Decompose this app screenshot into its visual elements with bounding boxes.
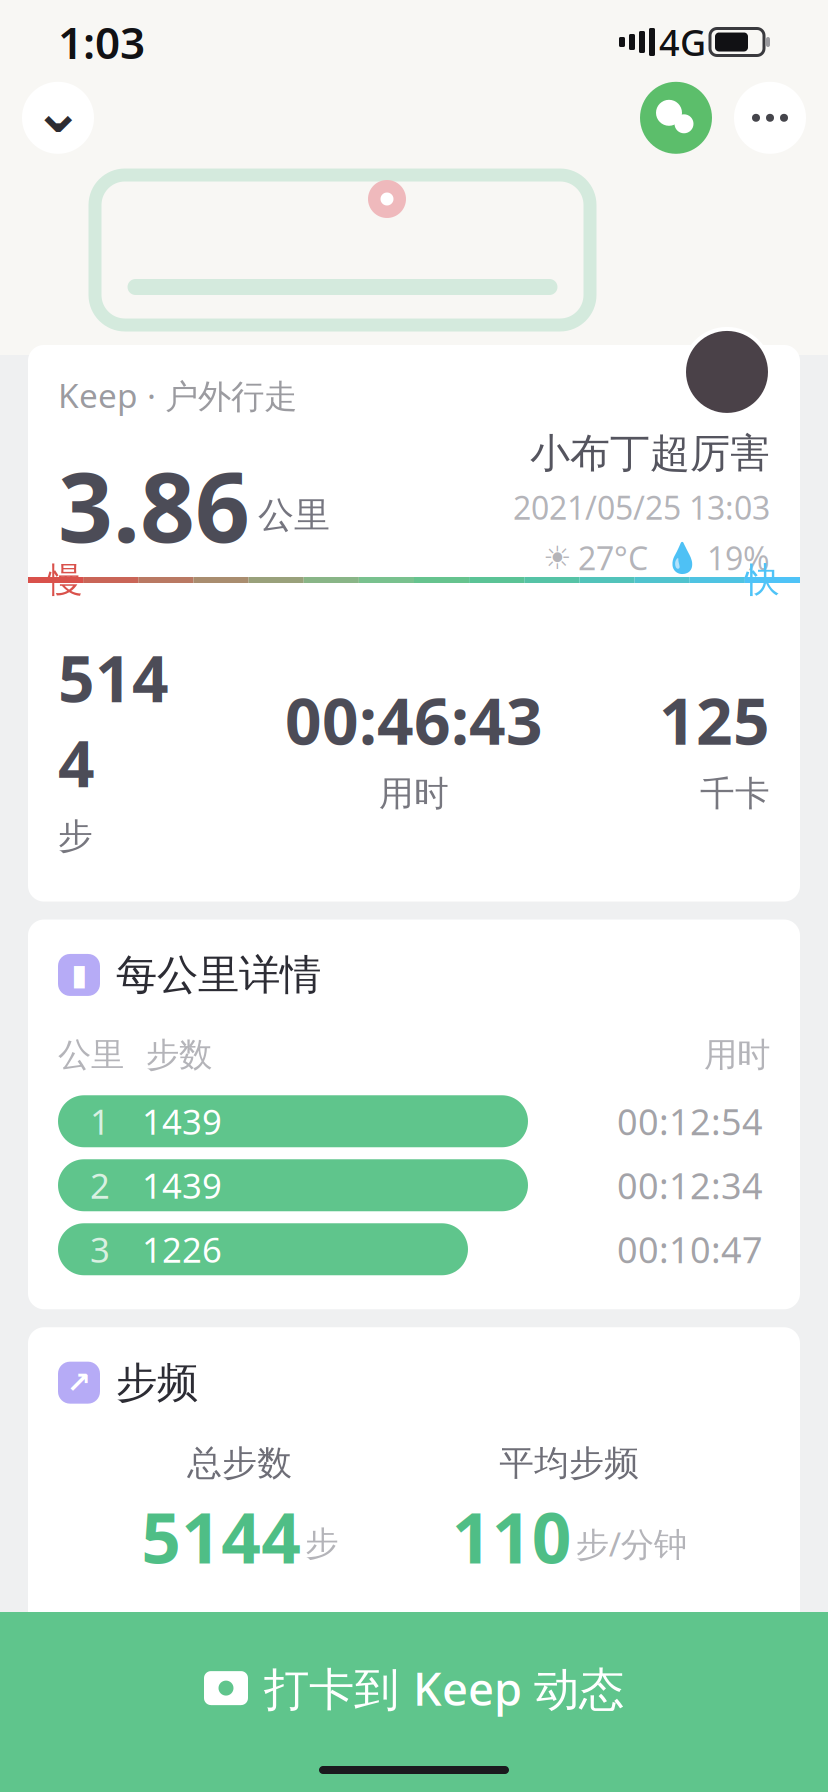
staticText: 00:10:47 bbox=[617, 1225, 763, 1273]
staticText: 1 bbox=[90, 1098, 110, 1144]
staticText: 3.86 bbox=[58, 441, 250, 569]
staticText: 125 bbox=[659, 677, 770, 762]
staticText: 1439 bbox=[142, 1162, 222, 1208]
staticText: 平均步频 bbox=[499, 1442, 639, 1485]
button[interactable]: Collapse bbox=[22, 76, 94, 160]
staticText: 💧 bbox=[664, 541, 701, 575]
staticText: ⌄ bbox=[32, 76, 83, 146]
staticText: 00:12:34 bbox=[617, 1161, 763, 1209]
staticText: 用时 bbox=[704, 1034, 770, 1075]
staticText: 00:12:54 bbox=[617, 1097, 763, 1145]
staticText: 19% bbox=[707, 537, 770, 579]
staticText: 快 bbox=[745, 559, 780, 601]
staticText: 步/分钟 bbox=[576, 1521, 687, 1566]
staticText: ☀ bbox=[543, 540, 572, 576]
staticText: 慢 bbox=[48, 559, 83, 601]
staticText: 1226 bbox=[142, 1226, 222, 1272]
staticText: Keep · 户外行走 bbox=[58, 373, 297, 417]
staticText: 3 bbox=[90, 1226, 110, 1272]
staticText: 每公里详情 bbox=[116, 950, 321, 1000]
staticText: 公里 bbox=[58, 1034, 124, 1075]
staticText: ↗ bbox=[66, 1366, 91, 1399]
button[interactable]: Share to WeChat bbox=[640, 82, 712, 154]
button[interactable]: More options bbox=[734, 82, 806, 154]
staticText: 步 bbox=[305, 1523, 338, 1564]
staticText: 步数 bbox=[146, 1034, 212, 1075]
staticText: 小布丁超厉害 bbox=[530, 429, 770, 478]
staticText: 27°C bbox=[578, 537, 648, 579]
staticText: 步 bbox=[58, 815, 93, 858]
staticText: 2021/05/25 13:03 bbox=[513, 486, 770, 529]
staticText: 打卡到 Keep 动态 bbox=[264, 1658, 624, 1718]
button[interactable]: 打卡到 Keep 动态 bbox=[0, 1612, 828, 1792]
staticText: 总步数 bbox=[187, 1442, 292, 1485]
staticText: 用时 bbox=[379, 772, 449, 815]
staticText: 千卡 bbox=[700, 772, 770, 815]
staticText: 步频 bbox=[116, 1357, 198, 1408]
staticText: 1:03 bbox=[58, 13, 145, 71]
staticText: 4G bbox=[659, 18, 706, 66]
staticText: 2 bbox=[90, 1162, 110, 1208]
staticText: 1439 bbox=[142, 1098, 222, 1144]
staticText: 5144 bbox=[141, 1491, 301, 1583]
staticText: 00:46:43 bbox=[285, 677, 543, 762]
staticText: 110 bbox=[452, 1491, 572, 1583]
staticText: ▮ bbox=[71, 958, 87, 992]
staticText: 公里 bbox=[258, 493, 330, 537]
staticText: 5144 bbox=[58, 635, 169, 805]
